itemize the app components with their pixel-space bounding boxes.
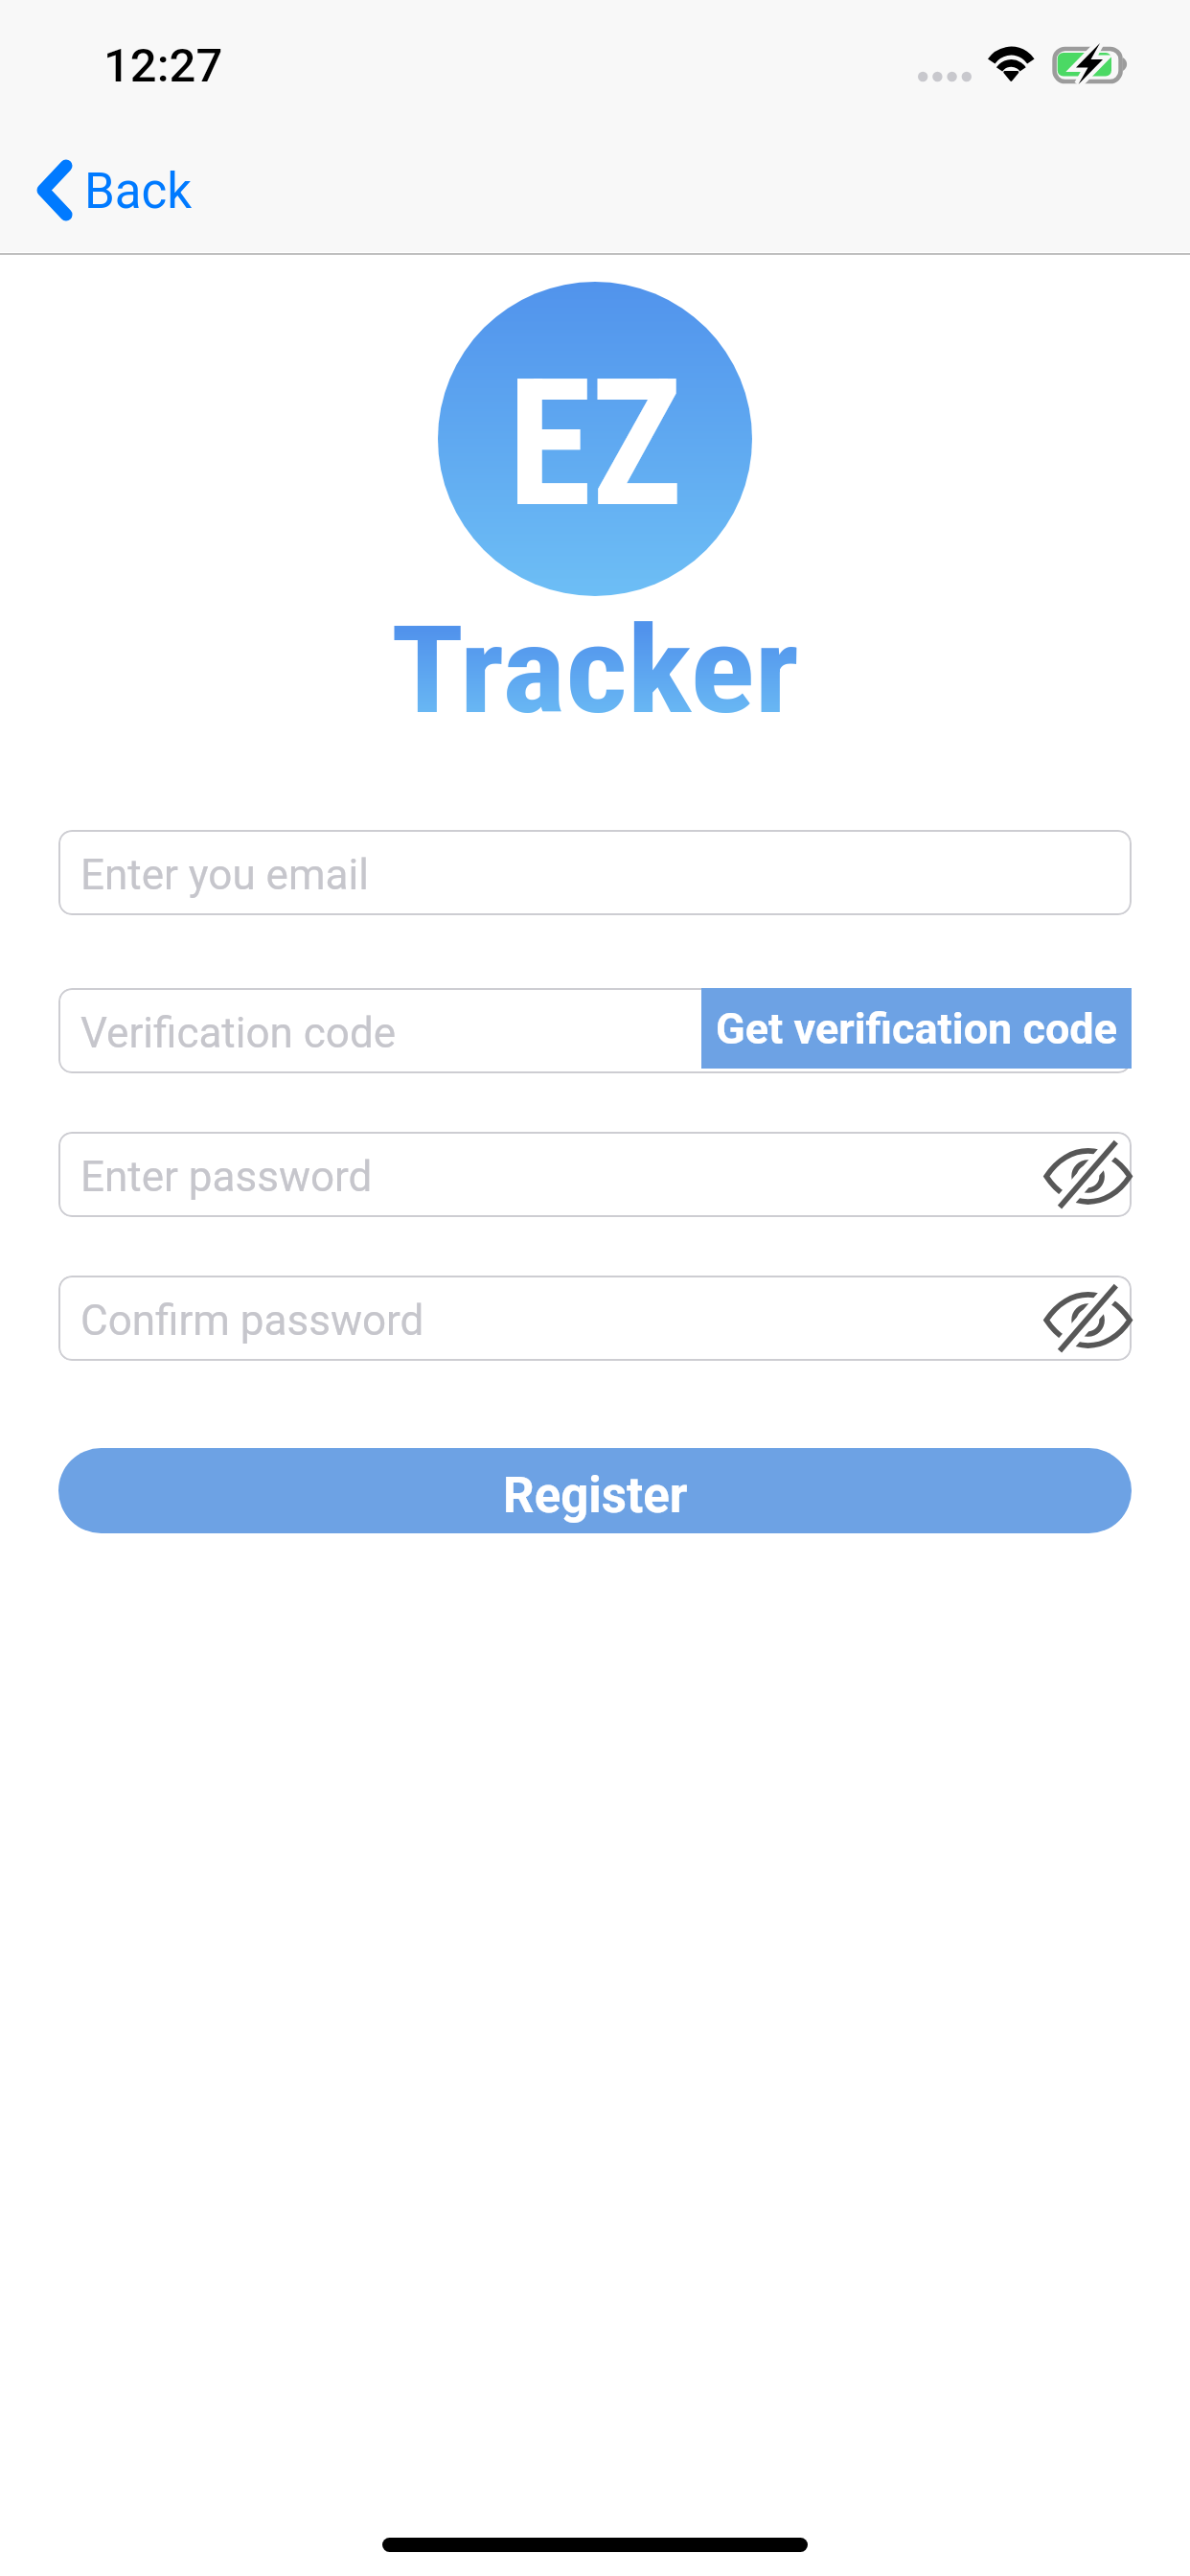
button[interactable]: Show password <box>1042 1281 1134 1356</box>
staticText: Register <box>503 1467 688 1525</box>
staticText: Enter you email <box>80 850 369 900</box>
staticText: Enter password <box>80 1152 373 1202</box>
button[interactable]: Show password <box>1042 1138 1134 1212</box>
button[interactable]: Get verification code <box>701 988 1132 1069</box>
staticText: Verification code <box>80 1008 397 1058</box>
staticText: EZ <box>508 340 682 547</box>
button[interactable]: Back <box>19 156 210 240</box>
button[interactable]: Register <box>58 1448 1132 1533</box>
staticText: Get verification code <box>716 1003 1117 1054</box>
staticText: Confirm password <box>80 1296 424 1345</box>
button[interactable]: Enter password <box>58 1132 1132 1217</box>
staticText: Back <box>84 163 193 220</box>
button[interactable]: Enter you email <box>58 830 1132 915</box>
staticText: 12:27 <box>103 38 223 93</box>
staticText: Tracker <box>391 599 799 742</box>
button[interactable]: Confirm password <box>58 1276 1132 1361</box>
button[interactable]: Verification code <box>58 988 1132 1073</box>
